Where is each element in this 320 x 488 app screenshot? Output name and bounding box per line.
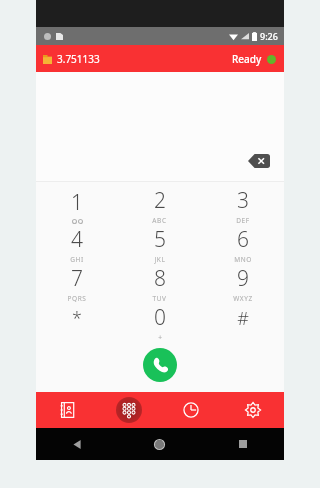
staticText: + (158, 333, 163, 342)
staticText: 2 (154, 186, 166, 215)
staticText: 1 (71, 188, 83, 217)
staticText: 9:26 (260, 30, 278, 42)
button[interactable]: 3 (201, 186, 284, 225)
button[interactable]: Backspace (248, 154, 270, 168)
staticText: 4 (71, 225, 83, 254)
button[interactable]: Call history (160, 392, 222, 428)
button[interactable]: * (36, 303, 118, 342)
staticText: * (72, 306, 82, 331)
staticText: WXYZ (233, 294, 253, 303)
staticText: 5 (154, 225, 166, 254)
staticText: 6 (237, 225, 249, 254)
staticText: MNO (234, 255, 252, 264)
staticText: TUV (152, 294, 167, 303)
staticText: 9 (237, 264, 249, 293)
button[interactable]: Call (143, 348, 177, 382)
button[interactable]: # (201, 303, 284, 342)
button[interactable]: 9 (201, 264, 284, 303)
staticText: 7 (71, 264, 83, 293)
staticText: 3.751133 (57, 52, 100, 66)
button[interactable]: Recent apps (201, 428, 284, 460)
button[interactable]: 1 (36, 186, 118, 225)
staticText: 3 (237, 186, 249, 215)
button[interactable]: 0 (118, 303, 201, 342)
staticText: 8 (154, 264, 166, 293)
staticText: ABC (152, 216, 167, 225)
button[interactable]: 7 (36, 264, 118, 303)
button[interactable]: Contacts (36, 392, 98, 428)
staticText: PQRS (67, 294, 87, 303)
button[interactable]: Settings (222, 392, 284, 428)
button[interactable]: Back (36, 428, 118, 460)
staticText: Ready (232, 52, 262, 66)
staticText: JKL (154, 255, 166, 264)
button[interactable]: Dialpad (98, 392, 160, 428)
button[interactable]: 6 (201, 225, 284, 264)
staticText: GHI (70, 255, 84, 264)
button[interactable]: 8 (118, 264, 201, 303)
staticText: # (237, 306, 249, 331)
button[interactable]: 5 (118, 225, 201, 264)
button[interactable]: Home (118, 428, 201, 460)
button[interactable]: 4 (36, 225, 118, 264)
button[interactable]: 2 (118, 186, 201, 225)
staticText: DEF (236, 216, 250, 225)
staticText: 0 (154, 303, 166, 332)
